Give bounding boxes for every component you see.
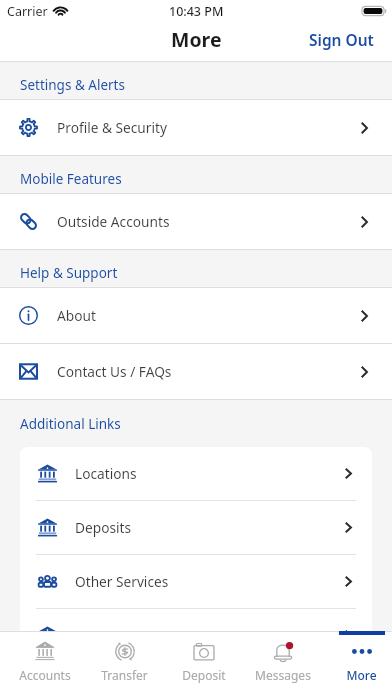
staticText: Sign Out <box>309 29 374 50</box>
staticText: Help & Support <box>20 264 118 282</box>
staticText: Profile & Security <box>57 118 167 137</box>
button[interactable]: More <box>322 631 392 696</box>
staticText: Carrier <box>7 3 48 20</box>
other: Messages <box>271 641 295 662</box>
staticText: Mobile Features <box>20 170 122 188</box>
other: Contact Us / FAQs <box>19 362 38 381</box>
button[interactable]: Messages <box>243 631 322 696</box>
button[interactable]: Outside Accounts <box>0 194 392 249</box>
staticText: More <box>346 667 377 683</box>
other: About <box>19 306 38 325</box>
staticText: Outside Accounts <box>57 212 170 231</box>
staticText: 10:43 PM <box>169 3 224 20</box>
staticText: About <box>57 306 96 325</box>
button[interactable]: Contact Us / FAQs <box>0 344 392 399</box>
staticText: Transfer <box>101 667 148 683</box>
staticText: Additional Links <box>20 415 121 433</box>
button[interactable]: Int. Rates <box>20 609 372 631</box>
staticText: Locations <box>75 464 137 483</box>
button[interactable]: Transfer <box>85 631 164 696</box>
other: Outside Accounts <box>19 212 38 231</box>
button[interactable]: About <box>0 288 392 343</box>
button[interactable]: Other Services <box>20 555 372 608</box>
staticText: Contact Us / FAQs <box>57 362 172 381</box>
other: Deposit <box>192 641 216 662</box>
button[interactable]: Locations <box>20 447 372 500</box>
staticText: Other Services <box>75 572 169 591</box>
button[interactable]: Profile & Security <box>0 100 392 155</box>
staticText: Deposit <box>182 667 226 683</box>
staticText: More <box>171 26 222 53</box>
staticText: Messages <box>255 667 311 683</box>
button[interactable]: Deposits <box>20 501 372 554</box>
staticText: Deposits <box>75 518 131 537</box>
other: More <box>350 641 374 662</box>
button[interactable]: Deposit <box>164 631 243 696</box>
other: Profile & Security <box>19 118 38 137</box>
staticText: Settings & Alerts <box>20 76 125 94</box>
button[interactable]: Accounts <box>5 631 85 696</box>
button[interactable]: Sign Out <box>295 25 392 58</box>
other: Accounts <box>33 641 57 662</box>
other: Transfer <box>113 641 137 662</box>
staticText: Accounts <box>19 667 71 683</box>
